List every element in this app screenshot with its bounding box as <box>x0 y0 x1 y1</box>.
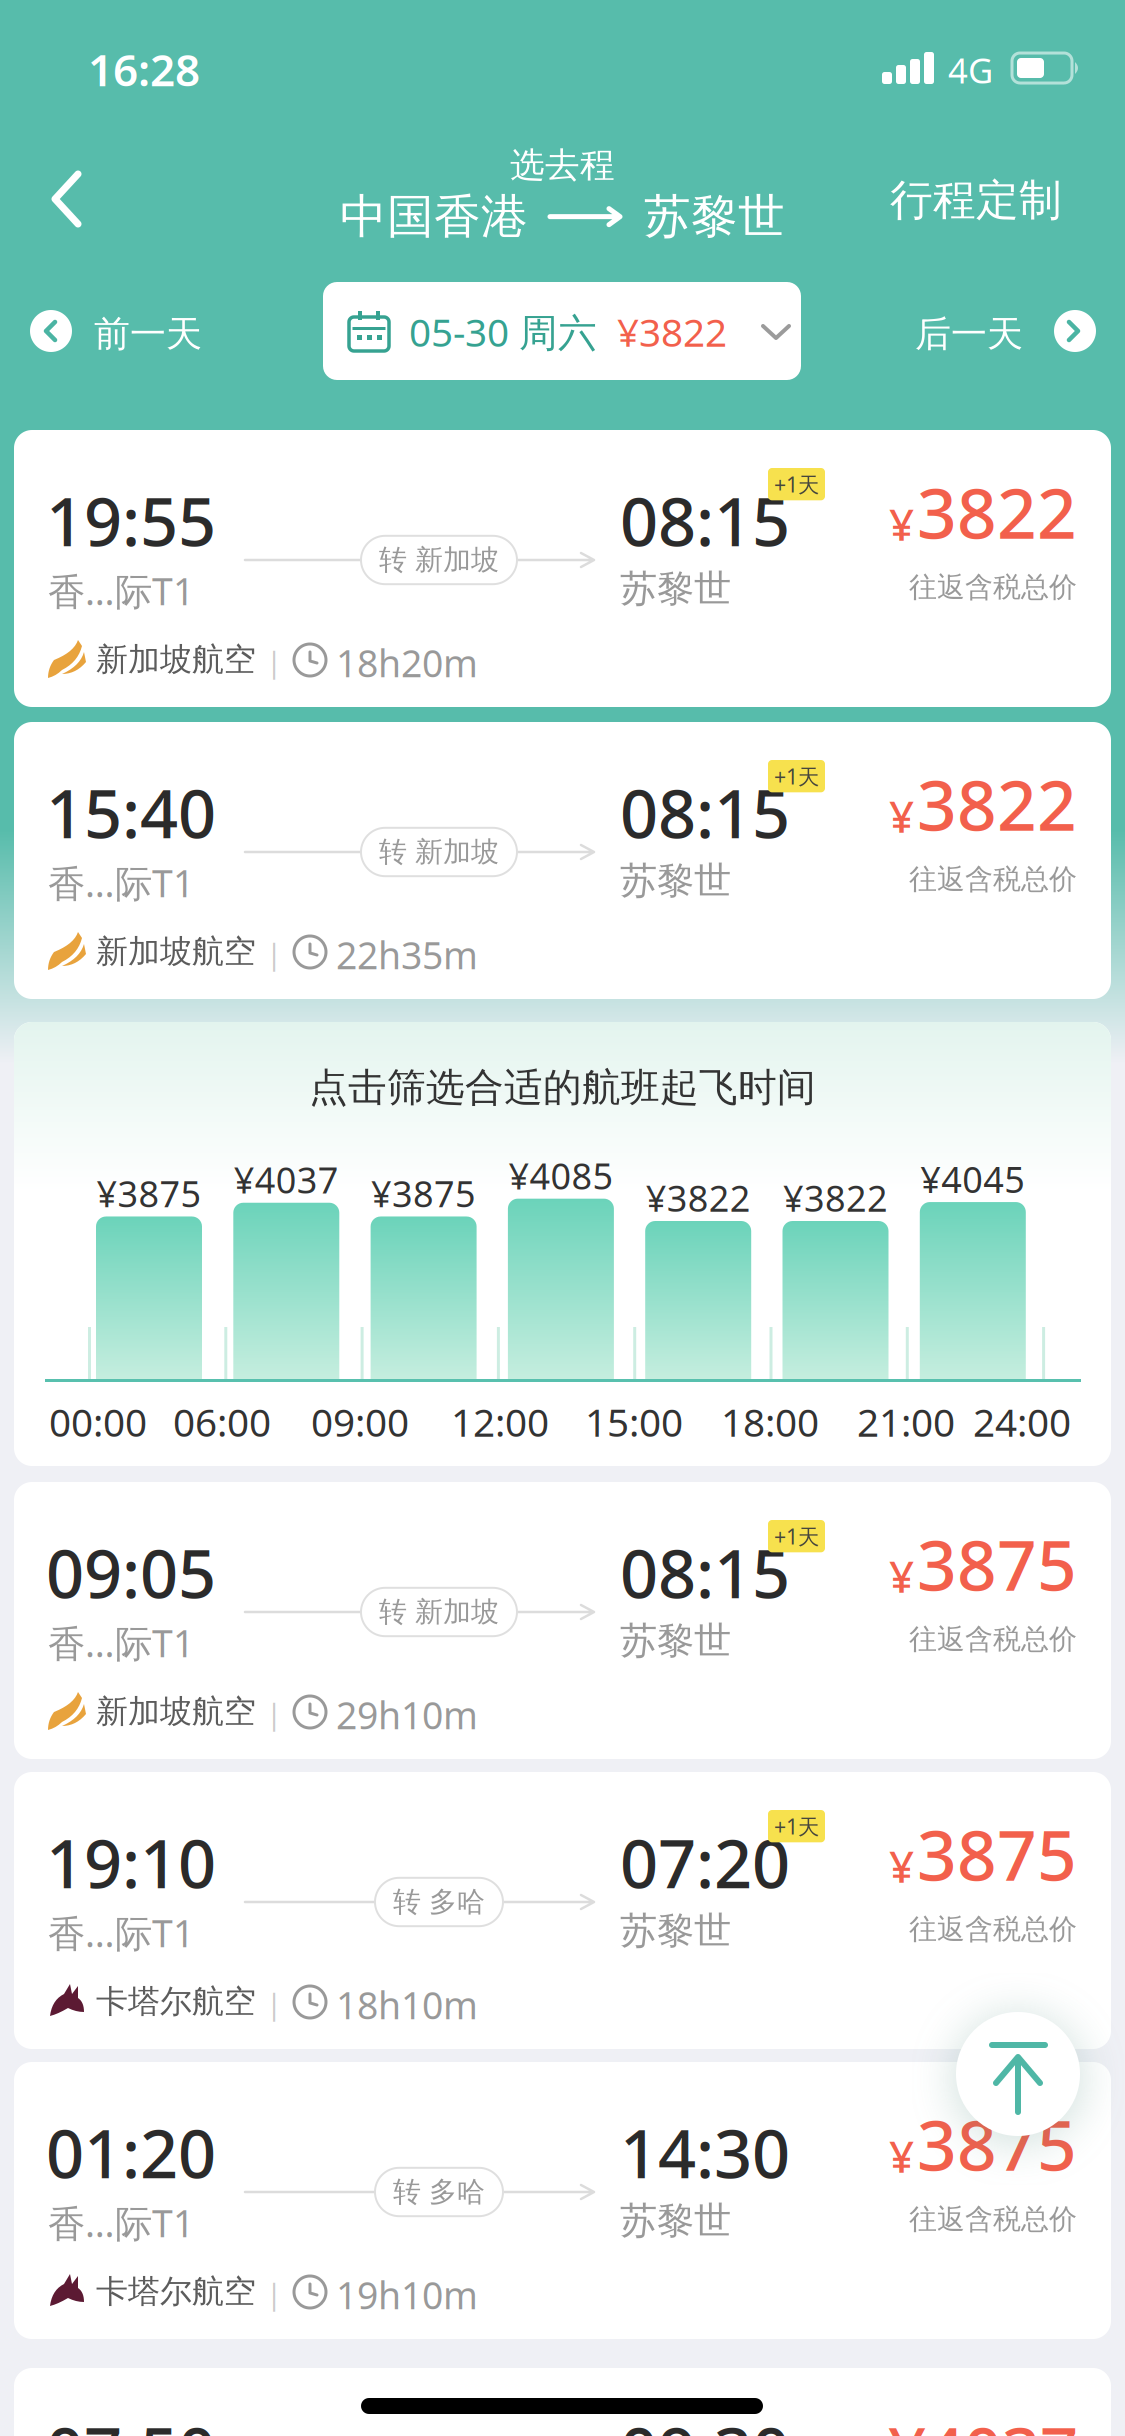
button[interactable]: 09:05 <box>14 1482 1111 1759</box>
staticText: 转 多哈 <box>393 2175 485 2209</box>
staticText: ¥4045 <box>920 1155 1025 1203</box>
staticText: 19:55 <box>46 476 216 564</box>
staticText: 苏黎世 <box>644 188 785 245</box>
staticText: ¥ <box>889 787 914 845</box>
staticText: 12:00 <box>451 1396 549 1447</box>
staticText: 08:15 <box>620 476 790 564</box>
button[interactable]: 19:55 <box>14 430 1111 707</box>
staticText: 苏黎世 <box>620 566 731 612</box>
staticText: 07:50 <box>46 2406 216 2436</box>
staticText: 往返含税总价 <box>909 1912 1077 1946</box>
staticText: 09:05 <box>46 1528 216 1616</box>
staticText: 18h10m <box>336 1980 478 2030</box>
staticText: ¥4037 <box>888 2406 1078 2436</box>
staticText: 3822 <box>917 758 1077 850</box>
staticText: 香…际T1 <box>48 1618 194 1668</box>
button[interactable]: Back to top <box>956 2012 1080 2136</box>
staticText: 点击筛选合适的航班起飞时间 <box>309 1064 816 1111</box>
staticText: 新加坡航空 <box>96 932 256 971</box>
staticText: 3875 <box>917 2098 1077 2190</box>
button[interactable]: 点击筛选合适的航班起飞时间 <box>14 1022 1111 1466</box>
staticText: 21:00 <box>857 1396 955 1447</box>
staticText: 4G <box>948 47 993 93</box>
staticText: 苏黎世 <box>620 1908 731 1954</box>
staticText: 苏黎世 <box>620 1618 731 1664</box>
staticText: ¥3875 <box>96 1169 201 1217</box>
staticText: 08:15 <box>620 1528 790 1616</box>
staticText: 苏黎世 <box>620 858 731 904</box>
button[interactable]: 01:20 <box>14 2062 1111 2339</box>
staticText: 3875 <box>917 1518 1077 1610</box>
staticText: ¥4085 <box>508 1152 613 1199</box>
staticText: | <box>266 2274 282 2313</box>
button[interactable]: 前一天 <box>30 310 220 352</box>
staticText: 18h20m <box>336 638 478 688</box>
staticText: 24:00 <box>973 1396 1071 1447</box>
staticText: 香…际T1 <box>48 566 194 616</box>
staticText: ¥3822 <box>783 1174 888 1222</box>
staticText: 转 新加坡 <box>379 543 499 577</box>
staticText: 00:00 <box>49 1396 147 1447</box>
staticText: 22h35m <box>336 930 478 980</box>
staticText: ¥3875 <box>371 1169 476 1217</box>
staticText: +1天 <box>774 1812 819 1840</box>
staticText: 香…际T1 <box>48 858 194 908</box>
staticText: 前一天 <box>94 312 202 356</box>
staticText: 3875 <box>917 1808 1077 1900</box>
staticText: 08:15 <box>620 768 790 856</box>
button[interactable]: Back <box>0 0 110 260</box>
staticText: ¥4037 <box>234 1156 339 1203</box>
staticText: 18:00 <box>721 1396 819 1447</box>
staticText: 转 新加坡 <box>379 835 499 869</box>
staticText: 转 多哈 <box>393 1885 485 1919</box>
staticText: 新加坡航空 <box>96 1692 256 1731</box>
staticText: 香…际T1 <box>48 1908 194 1958</box>
staticText: +1天 <box>774 762 819 790</box>
button[interactable]: 行程定制 <box>890 174 1062 226</box>
button[interactable]: 后一天 <box>915 310 1096 352</box>
staticText: 往返含税总价 <box>909 862 1077 896</box>
staticText: 07:20 <box>620 1818 790 1906</box>
staticText: | <box>266 1694 282 1733</box>
staticText: 19:10 <box>46 1818 216 1906</box>
staticText: 往返含税总价 <box>909 570 1077 604</box>
staticText: 09:00 <box>311 1396 409 1447</box>
staticText: 卡塔尔航空 <box>96 1982 256 2021</box>
staticText: 19h10m <box>336 2270 478 2320</box>
staticText: +1天 <box>774 470 819 498</box>
staticText: 06:00 <box>173 1396 271 1447</box>
staticText: 卡塔尔航空 <box>96 2272 256 2311</box>
staticText: 01:20 <box>46 2108 216 2196</box>
staticText: 29h10m <box>336 1690 478 1740</box>
button[interactable]: 19:10 <box>14 1772 1111 2049</box>
staticText: 往返含税总价 <box>909 1622 1077 1656</box>
staticText: 05-30 周六 <box>409 306 597 357</box>
staticText: 16:28 <box>88 40 200 98</box>
staticText: 往返含税总价 <box>909 2202 1077 2236</box>
staticText: 转 新加坡 <box>379 1595 499 1629</box>
staticText: 15:00 <box>585 1396 683 1447</box>
staticText: +1天 <box>774 1522 819 1550</box>
staticText: 新加坡航空 <box>96 640 256 679</box>
staticText: 行程定制 <box>890 174 1062 226</box>
staticText: 选去程 <box>510 144 615 187</box>
staticText: 14:30 <box>620 2108 790 2196</box>
staticText: 后一天 <box>915 312 1023 356</box>
staticText: ¥ <box>889 1837 914 1895</box>
staticText: 3822 <box>917 466 1077 558</box>
staticText: 09:30 <box>620 2406 790 2436</box>
staticText: | <box>266 934 282 973</box>
staticText: 15:40 <box>46 768 216 856</box>
button[interactable]: 05-30 周六 <box>323 282 801 380</box>
staticText: 香…际T1 <box>48 2198 194 2248</box>
staticText: 苏黎世 <box>620 2198 731 2244</box>
button[interactable]: 15:40 <box>14 722 1111 999</box>
staticText: ¥ <box>889 495 914 553</box>
staticText: | <box>266 642 282 681</box>
staticText: | <box>266 1984 282 2023</box>
staticText: ¥3822 <box>646 1174 751 1222</box>
staticText: 中国香港 <box>340 188 528 245</box>
staticText: ¥ <box>889 2127 914 2185</box>
staticText: ¥3822 <box>617 306 727 357</box>
staticText: ¥ <box>889 1547 914 1605</box>
